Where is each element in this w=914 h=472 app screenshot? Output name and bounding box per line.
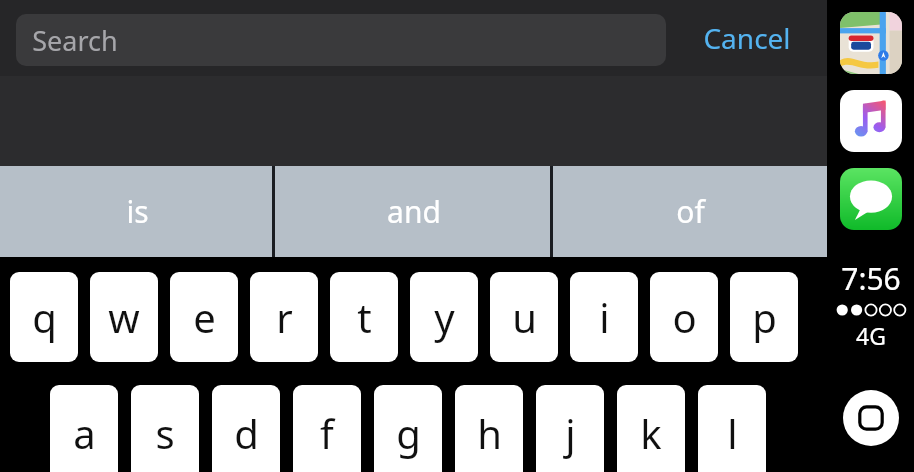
staticText: 4G bbox=[856, 320, 886, 351]
staticText: q bbox=[32, 290, 57, 344]
button[interactable]: j bbox=[536, 385, 604, 472]
button[interactable]: s bbox=[131, 385, 199, 472]
button[interactable]: g bbox=[374, 385, 442, 472]
staticText: s bbox=[155, 406, 175, 460]
staticText: a bbox=[73, 406, 96, 460]
button[interactable]: a bbox=[50, 385, 118, 472]
staticText: h bbox=[477, 406, 502, 460]
staticText: 7:56 bbox=[841, 258, 901, 299]
staticText: u bbox=[512, 290, 537, 344]
staticText: p bbox=[752, 290, 777, 344]
staticText: l bbox=[727, 406, 738, 460]
button[interactable]: Home bbox=[843, 390, 899, 446]
staticText: i bbox=[599, 290, 610, 344]
button[interactable]: i bbox=[570, 272, 638, 362]
button[interactable]: y bbox=[410, 272, 478, 362]
button[interactable]: l bbox=[698, 385, 766, 472]
button[interactable]: and bbox=[275, 166, 553, 257]
button[interactable]: e bbox=[170, 272, 238, 362]
staticText: g bbox=[396, 406, 421, 460]
staticText: o bbox=[672, 290, 697, 344]
button[interactable]: Messages bbox=[840, 168, 902, 230]
button[interactable]: r bbox=[250, 272, 318, 362]
staticText: w bbox=[108, 290, 140, 344]
staticText: k bbox=[640, 406, 662, 460]
staticText: y bbox=[434, 290, 455, 344]
staticText: r bbox=[276, 290, 293, 344]
staticText: f bbox=[320, 406, 334, 460]
button[interactable]: u bbox=[490, 272, 558, 362]
button[interactable]: is bbox=[0, 166, 275, 257]
staticText: Cancel bbox=[703, 19, 791, 57]
button[interactable]: h bbox=[455, 385, 523, 472]
button[interactable]: t bbox=[330, 272, 398, 362]
button[interactable]: d bbox=[212, 385, 280, 472]
staticText: d bbox=[234, 406, 259, 460]
button[interactable]: Music bbox=[840, 90, 902, 152]
staticText: Search bbox=[32, 22, 118, 59]
button[interactable]: f bbox=[293, 385, 361, 472]
button[interactable]: o bbox=[650, 272, 718, 362]
button[interactable]: p bbox=[730, 272, 798, 362]
button[interactable]: Search bbox=[16, 14, 666, 66]
button[interactable]: w bbox=[90, 272, 158, 362]
staticText: is bbox=[126, 191, 149, 232]
button[interactable]: Maps bbox=[840, 12, 902, 74]
button[interactable]: Cancel bbox=[682, 0, 812, 76]
button[interactable]: of bbox=[553, 166, 827, 257]
staticText: e bbox=[193, 290, 216, 344]
staticText: of bbox=[676, 191, 705, 232]
button[interactable]: q bbox=[10, 272, 78, 362]
staticText: t bbox=[357, 290, 372, 344]
staticText: j bbox=[565, 406, 576, 460]
button[interactable]: k bbox=[617, 385, 685, 472]
staticText: and bbox=[387, 191, 441, 232]
